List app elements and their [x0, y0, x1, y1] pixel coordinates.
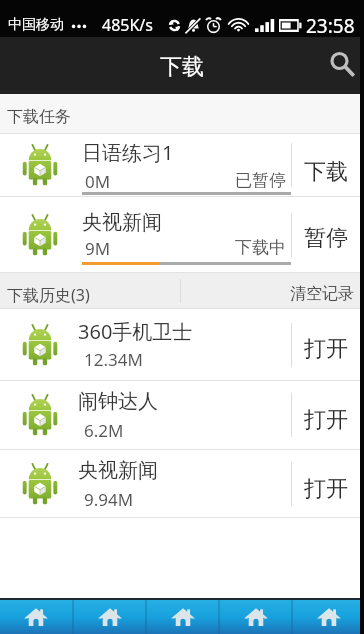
- button[interactable]: 360手机卫士: [0, 309, 364, 381]
- staticText: 9M: [85, 237, 111, 260]
- staticText: 下载: [304, 158, 348, 186]
- button[interactable]: 打开: [292, 381, 360, 450]
- button[interactable]: Home: [74, 600, 145, 634]
- staticText: 485K/s: [102, 14, 153, 36]
- staticText: 打开: [304, 475, 348, 503]
- staticText: 日语练习1: [82, 139, 174, 166]
- staticText: 暂停: [304, 224, 348, 252]
- button[interactable]: Home: [0, 600, 72, 634]
- staticText: 打开: [304, 335, 348, 363]
- button[interactable]: 央视新闻: [0, 197, 364, 273]
- button[interactable]: 暂停: [292, 197, 360, 273]
- staticText: 下载中: [235, 237, 286, 258]
- staticText: 下载: [160, 53, 204, 81]
- button[interactable]: Home: [220, 600, 291, 634]
- staticText: 清空记录: [290, 284, 354, 304]
- staticText: 360手机卫士: [78, 318, 193, 345]
- staticText: 央视新闻: [78, 458, 158, 483]
- staticText: 12.34M: [84, 348, 143, 371]
- staticText: 6.2M: [84, 419, 124, 442]
- staticText: 0M: [85, 170, 111, 193]
- button[interactable]: 央视新闻: [0, 450, 364, 518]
- button[interactable]: Home: [147, 600, 218, 634]
- button[interactable]: 清空记录: [284, 273, 364, 309]
- staticText: 闹钟达人: [78, 389, 158, 414]
- button[interactable]: 打开: [292, 450, 360, 518]
- button[interactable]: Search: [312, 37, 364, 94]
- staticText: 中国移动: [8, 16, 64, 34]
- staticText: 已暂停: [235, 170, 286, 191]
- button[interactable]: 打开: [292, 309, 360, 381]
- button[interactable]: 日语练习1: [0, 134, 364, 197]
- staticText: 打开: [304, 406, 348, 434]
- staticText: 23:58: [306, 13, 355, 37]
- staticText: 下载历史(3): [7, 284, 90, 306]
- staticText: 9.94M: [84, 488, 134, 511]
- button[interactable]: 闹钟达人: [0, 381, 364, 450]
- staticText: 央视新闻: [82, 210, 162, 235]
- button[interactable]: 下载: [292, 134, 360, 197]
- staticText: 下载任务: [7, 107, 71, 127]
- button[interactable]: Home: [293, 600, 364, 634]
